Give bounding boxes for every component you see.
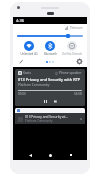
staticText: 00:00 [18,92,26,96]
staticText: Phone speaker [59,71,82,75]
button[interactable]: Back [26,151,34,159]
button[interactable]: Recent apps [67,151,75,159]
button[interactable]: Kasts [15,69,85,106]
button[interactable]: Settings [76,58,83,65]
button[interactable]: Edit tiles [17,58,24,65]
button[interactable]: Skip forward [52,98,58,104]
button[interactable]: Unlimited 4G [19,41,39,56]
staticText: Platform Community [18,83,50,87]
staticText: Telecom [70,26,83,30]
staticText: 54:58 [74,92,82,96]
button[interactable]: Do Not Disturb [62,41,82,56]
button[interactable]: 013 Privacy and Security wi... [15,113,85,124]
button[interactable]: Pause [42,98,48,104]
staticText: Do Not Disturb [62,52,82,56]
staticText: Bluetooth [44,52,57,56]
staticText: Platform Community [25,119,53,123]
staticText: 4:36 [16,18,24,23]
staticText: Unlimited 4G [20,52,38,56]
staticText: Kasts [23,71,31,75]
button[interactable] [15,108,85,113]
button[interactable]: Home [46,151,54,159]
button[interactable]: Bluetooth [40,41,60,56]
staticText: 013 Privacy and Security with RTP [18,77,81,82]
staticText: 013 Privacy and Security wi... [25,115,68,119]
